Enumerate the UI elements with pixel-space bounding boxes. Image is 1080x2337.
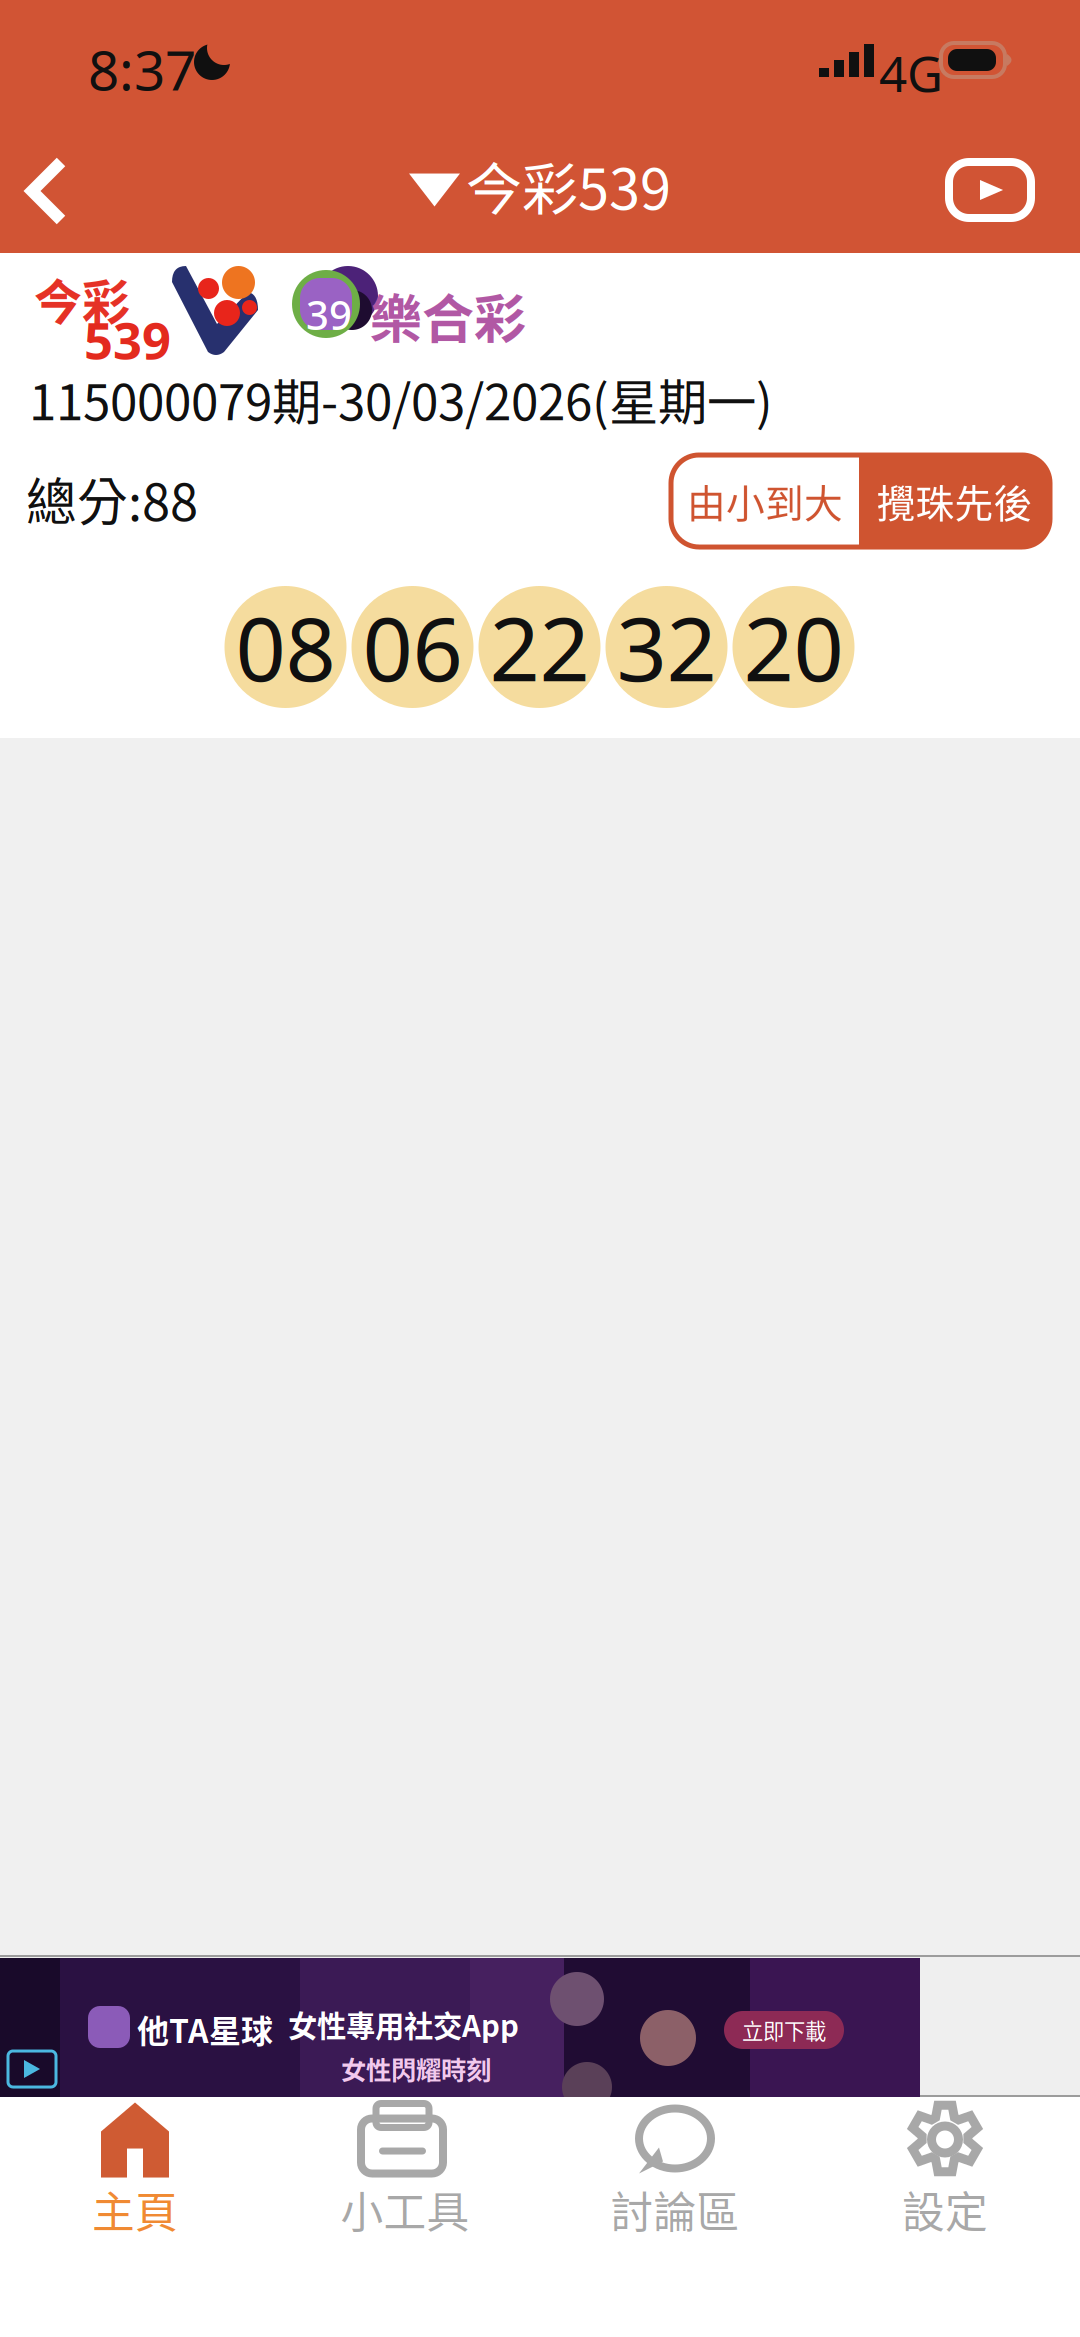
- staticText: 由小到大: [687, 473, 843, 529]
- staticText: 樂合彩: [370, 278, 526, 353]
- staticText: 攪珠先後: [876, 473, 1032, 529]
- staticText: 小工具: [340, 2179, 469, 2240]
- staticText: 539: [84, 306, 171, 373]
- staticText: 立即下載: [742, 2015, 826, 2045]
- staticText: 08: [235, 589, 335, 705]
- staticText: 20: [743, 589, 843, 705]
- staticText: 女性專用社交App: [288, 2003, 519, 2045]
- button[interactable]: 討論區: [540, 2097, 810, 2242]
- staticText: 06: [362, 589, 462, 705]
- staticText: 39: [306, 288, 352, 341]
- staticText: 32: [616, 589, 716, 705]
- staticText: 今彩539: [466, 144, 671, 226]
- staticText: 4G: [879, 40, 943, 105]
- button[interactable]: Video: [922, 135, 1062, 245]
- button[interactable]: 設定: [810, 2097, 1080, 2242]
- button[interactable]: Back: [0, 130, 110, 240]
- staticText: 討論區: [610, 2179, 739, 2240]
- button[interactable]: 今彩539: [409, 130, 709, 240]
- staticText: 總分:88: [26, 462, 198, 535]
- staticText: 22: [489, 589, 589, 705]
- button[interactable]: 小工具: [270, 2097, 540, 2242]
- button[interactable]: 主頁: [0, 2097, 270, 2242]
- staticText: 115000079期-30/03/2026(星期一): [29, 363, 773, 434]
- staticText: 今彩: [34, 264, 130, 333]
- staticText: 主頁: [92, 2179, 178, 2240]
- button[interactable]: 他TA星球: [0, 1958, 920, 2097]
- staticText: 8:37: [88, 33, 196, 106]
- staticText: 設定: [902, 2179, 988, 2240]
- button[interactable]: 由小到大: [671, 455, 859, 547]
- staticText: 女性閃耀時刻: [341, 2050, 491, 2087]
- button[interactable]: 攪珠先後: [859, 455, 1050, 547]
- staticText: 他TA星球: [137, 2006, 273, 2052]
